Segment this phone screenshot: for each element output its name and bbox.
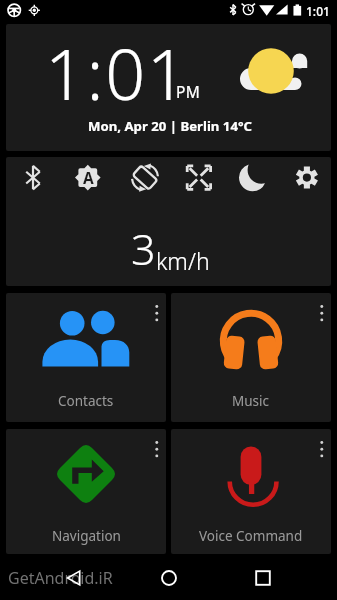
staticText: Navigation <box>52 527 121 545</box>
button[interactable]: Back <box>58 562 90 594</box>
staticText: Contacts <box>58 392 114 410</box>
button[interactable]: 1:01 <box>6 24 331 151</box>
staticText: 1:01 <box>45 25 189 120</box>
button[interactable]: Recents <box>247 562 279 594</box>
button[interactable]: Home <box>153 562 185 594</box>
staticText: Mon, Apr 20 | Berlin 14°C <box>88 117 252 135</box>
button[interactable]: More options for Music <box>305 293 331 319</box>
staticText: 1:01 <box>306 3 330 19</box>
button[interactable]: More options for Navigation <box>140 429 166 455</box>
button[interactable]: Music <box>171 293 331 422</box>
staticText: km/h <box>156 245 210 276</box>
button[interactable]: Navigation <box>6 429 166 554</box>
button[interactable]: Contacts <box>6 293 166 422</box>
button[interactable]: Auto brightness <box>71 160 105 194</box>
staticText: GetAndroid.iR <box>8 567 113 589</box>
button[interactable]: Do not disturb <box>236 160 270 194</box>
button[interactable]: Auto rotate <box>128 160 162 194</box>
staticText: Music <box>232 392 270 410</box>
button[interactable]: Bluetooth <box>16 160 50 194</box>
button[interactable]: Full screen <box>182 160 216 194</box>
button[interactable]: Settings <box>290 160 324 194</box>
staticText: Voice Command <box>199 527 303 545</box>
staticText: 3 <box>131 219 156 278</box>
button[interactable]: More options for Voice Command <box>305 429 331 455</box>
button[interactable]: More options for Contacts <box>140 293 166 319</box>
staticText: PM <box>176 81 201 102</box>
staticText: A <box>83 167 94 188</box>
button[interactable]: Voice Command <box>171 429 331 554</box>
